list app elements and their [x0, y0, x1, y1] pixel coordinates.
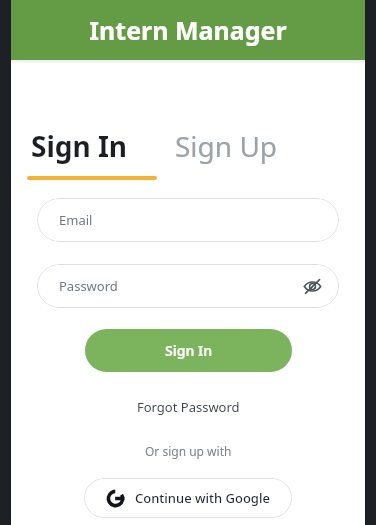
button[interactable]: Sign In	[27, 127, 157, 180]
button[interactable]: Password	[37, 264, 339, 308]
button[interactable]: Continue with Google	[84, 478, 292, 518]
staticText: Intern Manager	[89, 13, 287, 47]
button[interactable]: Sign In	[85, 329, 292, 372]
button[interactable]: Forgot Password	[133, 394, 244, 420]
staticText: Sign In	[165, 341, 213, 360]
staticText: Or sign up with	[145, 443, 232, 459]
staticText: Continue with Google	[135, 489, 270, 507]
staticText: Sign Up	[175, 127, 278, 165]
staticText: Email	[59, 211, 323, 229]
staticText: Sign In	[31, 127, 128, 165]
staticText: Forgot Password	[137, 398, 240, 416]
staticText: Password	[59, 277, 301, 295]
button[interactable]: Email	[37, 198, 339, 242]
button[interactable]: Show password	[301, 275, 323, 297]
button[interactable]: Sign Up	[175, 127, 278, 180]
